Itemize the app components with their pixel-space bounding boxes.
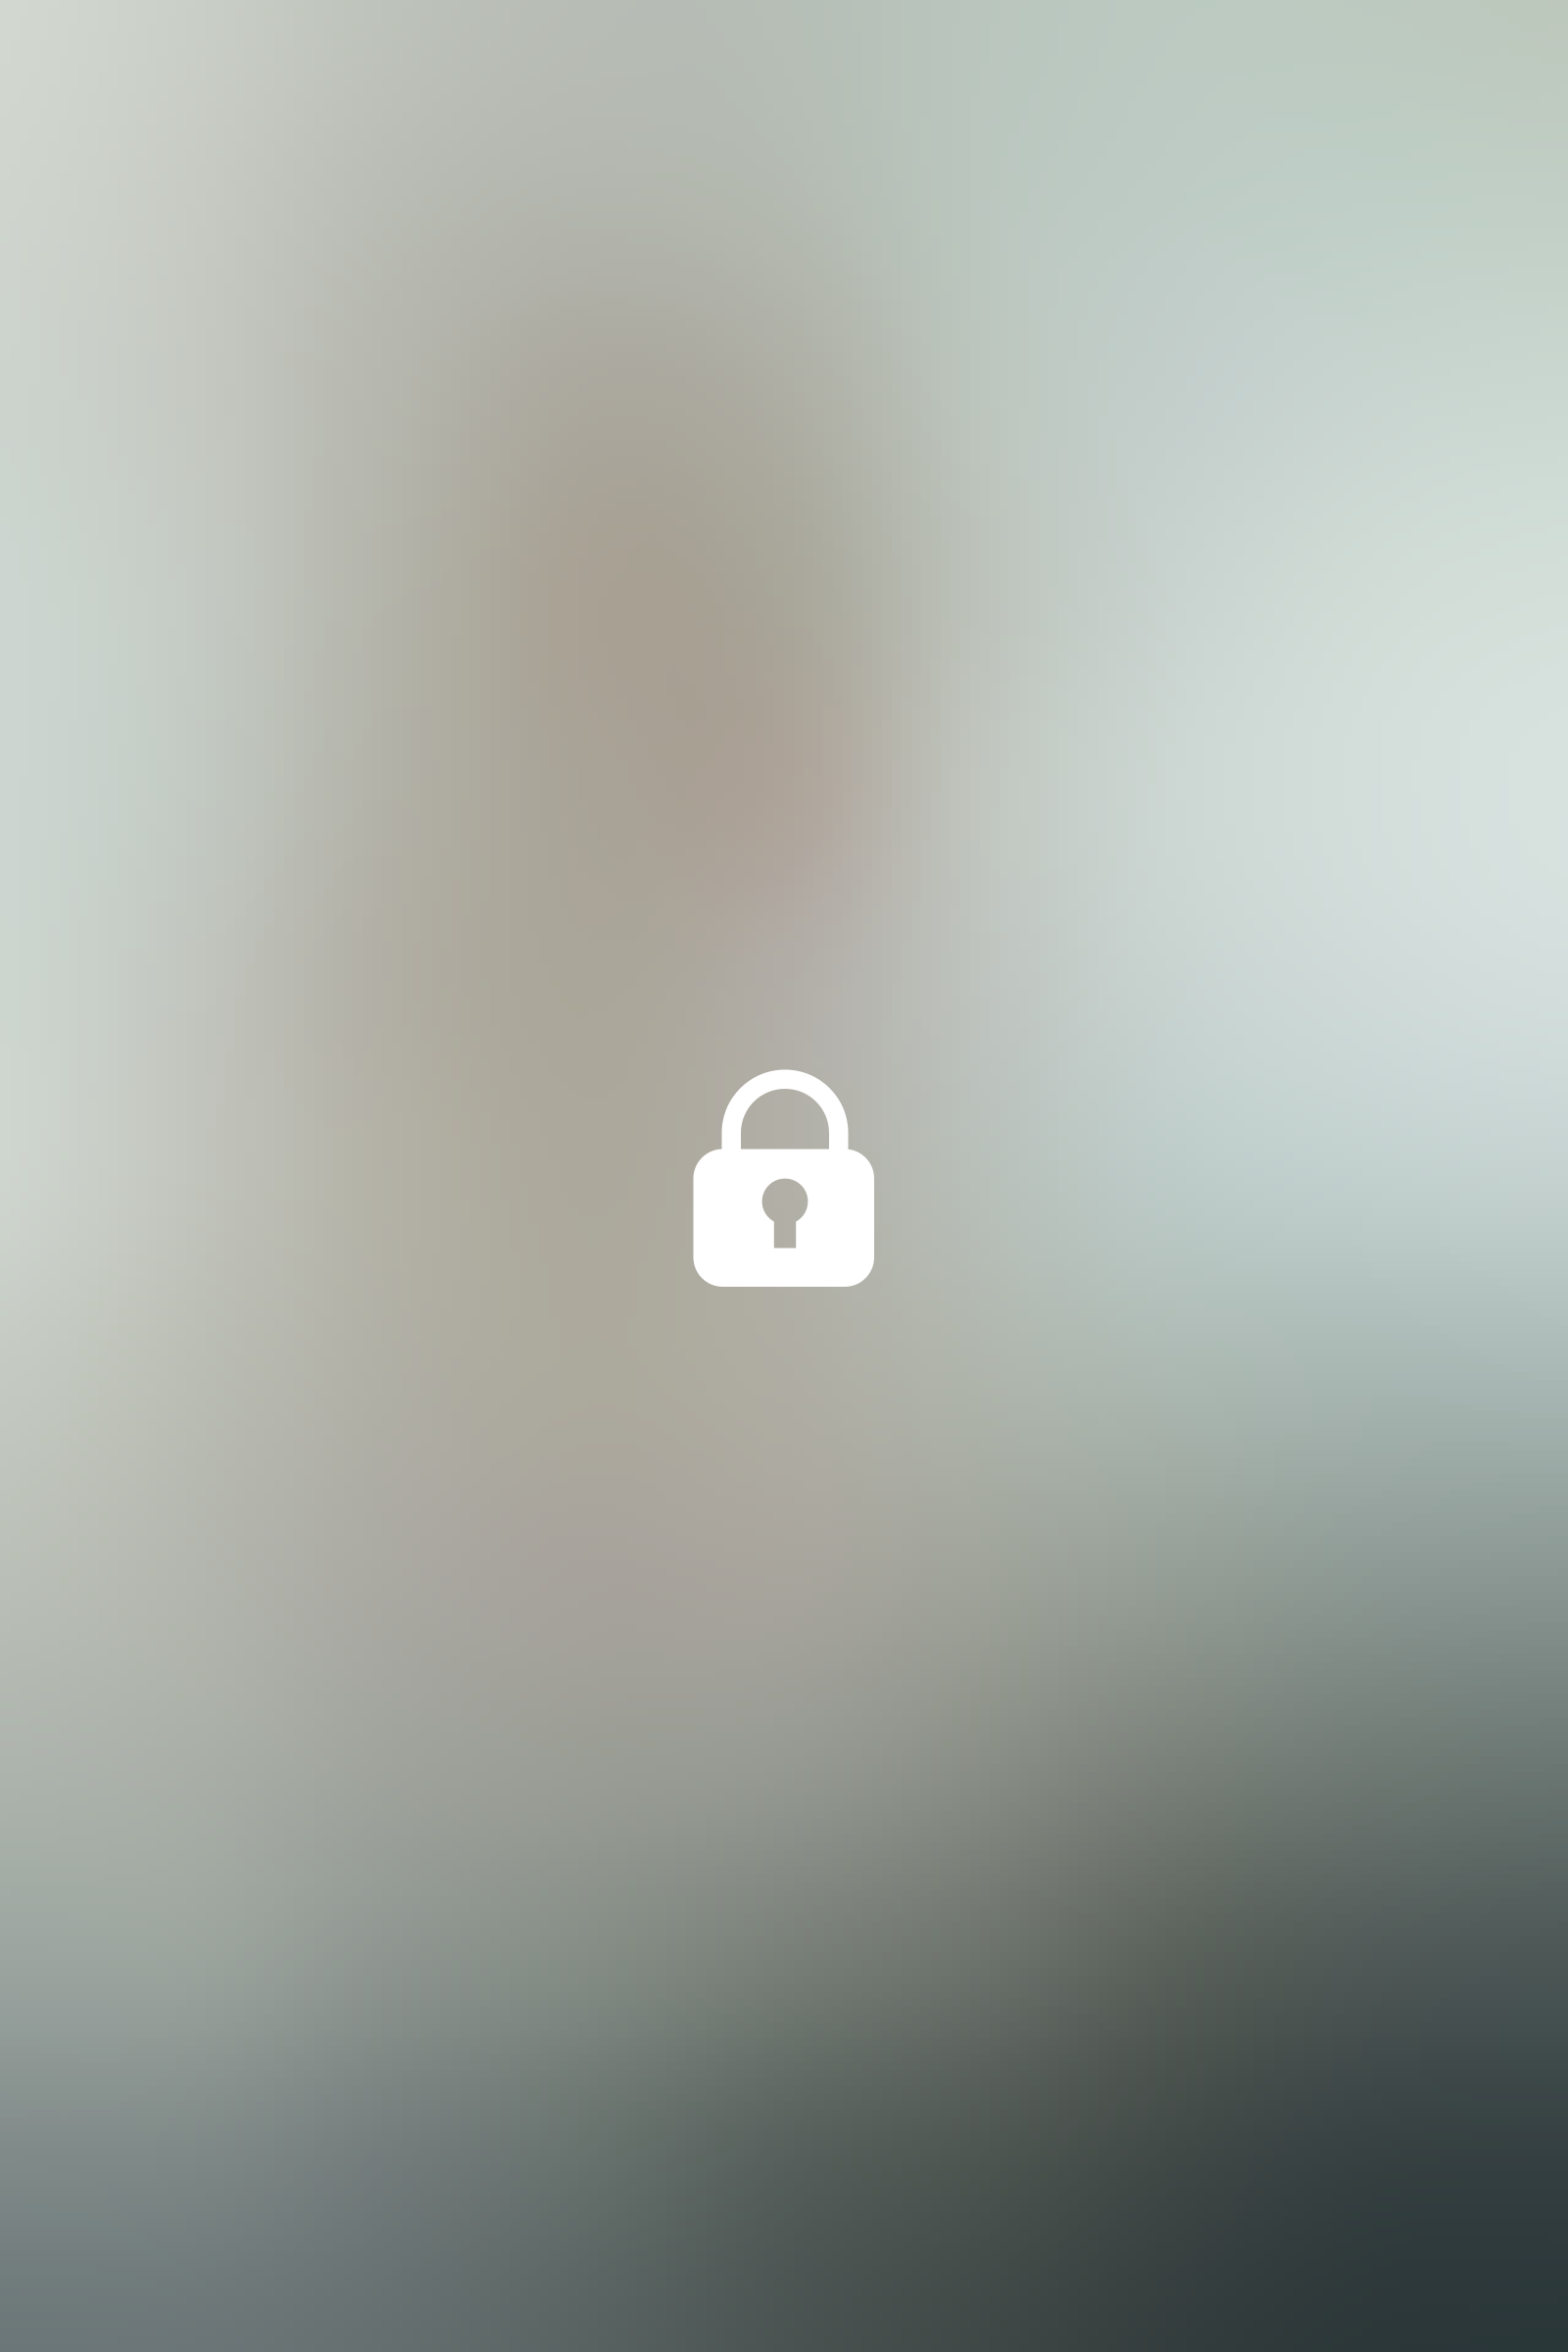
button[interactable]: Unlock — [0, 0, 1568, 2352]
